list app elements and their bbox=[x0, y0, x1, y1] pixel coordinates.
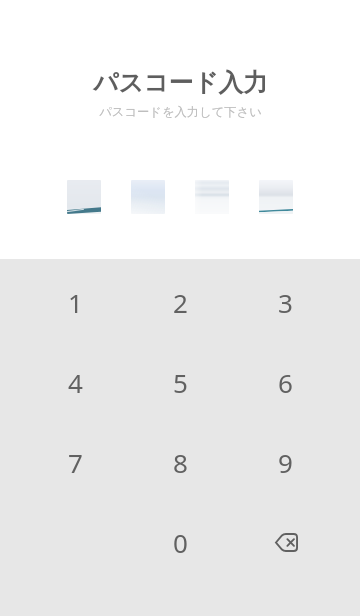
staticText: パスコード入力 bbox=[93, 67, 268, 98]
button[interactable]: 5 bbox=[128, 342, 233, 422]
button[interactable]: 3 bbox=[233, 262, 338, 342]
button[interactable]: Backspace bbox=[233, 502, 338, 582]
staticText: 8 bbox=[173, 445, 188, 480]
button[interactable]: 0 bbox=[128, 502, 233, 582]
staticText: 1 bbox=[68, 285, 83, 320]
staticText: 0 bbox=[173, 525, 188, 560]
staticText: 3 bbox=[278, 285, 293, 320]
staticText: 7 bbox=[68, 445, 83, 480]
staticText: 5 bbox=[173, 365, 188, 400]
button[interactable]: 8 bbox=[128, 422, 233, 502]
button[interactable]: 7 bbox=[22, 422, 128, 502]
staticText: パスコードを入力して下さい bbox=[99, 104, 262, 119]
button[interactable]: 9 bbox=[233, 422, 338, 502]
button[interactable]: 4 bbox=[22, 342, 128, 422]
button[interactable]: 2 bbox=[128, 262, 233, 342]
button[interactable]: 1 bbox=[22, 262, 128, 342]
staticText: 6 bbox=[278, 365, 293, 400]
staticText: 2 bbox=[173, 285, 188, 320]
staticText: 9 bbox=[278, 445, 293, 480]
button[interactable]: 6 bbox=[233, 342, 338, 422]
other: Backspace bbox=[274, 533, 298, 552]
staticText: 4 bbox=[68, 365, 83, 400]
